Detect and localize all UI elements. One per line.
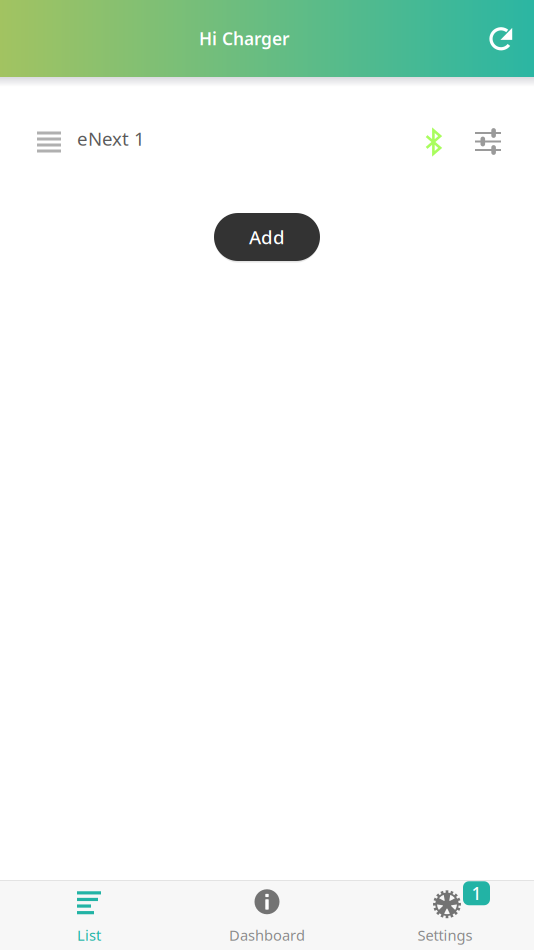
staticText: eNext 1 xyxy=(77,126,145,151)
staticText: Settings xyxy=(417,925,472,945)
button[interactable]: List xyxy=(0,881,178,950)
button[interactable]: Refresh xyxy=(474,10,534,66)
staticText: Dashboard xyxy=(229,925,305,945)
staticText: List xyxy=(77,925,101,945)
staticText: Add xyxy=(249,225,285,249)
staticText: 1 xyxy=(471,882,481,905)
staticText: Hi Charger xyxy=(199,27,290,50)
button[interactable]: 1 xyxy=(356,881,534,950)
button[interactable]: Add xyxy=(207,211,327,269)
button[interactable]: Dashboard xyxy=(178,881,356,950)
button[interactable]: eNext 1 xyxy=(0,77,534,174)
